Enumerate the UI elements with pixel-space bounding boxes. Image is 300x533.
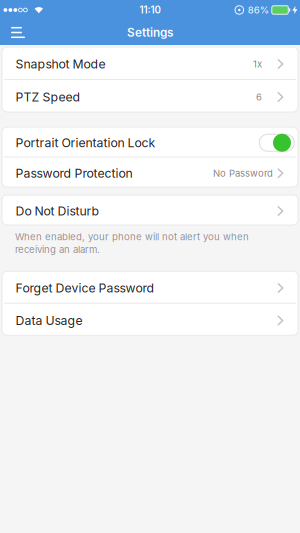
staticText: 1x [253, 58, 262, 70]
staticText: When enabled, your phone will not alert … [15, 231, 249, 243]
staticText: receiving an alarm. [15, 244, 100, 255]
staticText: 6 [256, 91, 262, 103]
staticText: Snapshot Mode [15, 57, 105, 71]
button[interactable] [0, 27, 25, 38]
staticText: No Password [213, 167, 273, 179]
staticText: 86% [248, 4, 269, 16]
staticText: Forget Device Password [15, 281, 154, 295]
staticText: Settings [127, 25, 173, 40]
button[interactable]: Data Usage [2, 304, 298, 335]
button[interactable]: Snapshot Mode [2, 47, 298, 79]
button[interactable]: Forget Device Password [2, 271, 298, 303]
staticText: Do Not Disturb [15, 204, 99, 218]
button[interactable]: Password Protection [2, 157, 298, 187]
button[interactable]: Do Not Disturb [2, 195, 298, 225]
staticText: Portrait Orientation Lock [15, 135, 155, 150]
button[interactable]: Portrait Orientation Lock [2, 127, 298, 156]
staticText: PTZ Speed [15, 90, 80, 104]
button[interactable]: PTZ Speed [2, 80, 298, 112]
staticText: Password Protection [15, 166, 132, 181]
staticText: 11:10 [139, 4, 160, 16]
staticText: Data Usage [15, 313, 82, 328]
